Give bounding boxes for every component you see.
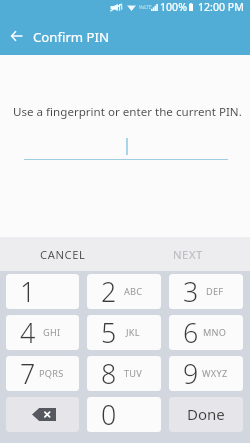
staticText: 7 — [20, 356, 36, 390]
staticText: JKL — [126, 326, 140, 339]
staticText: MNO — [203, 326, 227, 339]
staticText: 100% — [160, 0, 187, 14]
staticText: PQRS — [39, 367, 64, 380]
button[interactable]: CANCEL — [0, 237, 125, 271]
staticText: 9 — [183, 356, 199, 390]
staticText: 1 — [20, 274, 36, 308]
staticText: 5 — [101, 315, 117, 349]
staticText: CANCEL — [40, 247, 86, 262]
staticText: TUV — [124, 367, 143, 380]
staticText: WXYZ — [202, 367, 228, 380]
button[interactable]: 5 — [87, 315, 161, 350]
staticText: NEXT — [173, 247, 203, 262]
button[interactable]: 7 — [6, 356, 79, 391]
button[interactable]: 9 — [169, 356, 243, 391]
staticText: 6 — [183, 315, 199, 349]
staticText: Use a fingerprint or enter the current P… — [13, 104, 242, 120]
button[interactable]: 0 — [87, 397, 161, 432]
button[interactable]: 6 — [169, 315, 243, 350]
staticText: DEF — [206, 285, 224, 298]
staticText: ABC — [124, 285, 143, 298]
button[interactable]: Done — [169, 397, 243, 432]
button[interactable]: 3 — [169, 274, 243, 309]
staticText: 8 — [101, 356, 117, 390]
staticText: VoLTE — [139, 4, 152, 10]
button[interactable]: 8 — [87, 356, 161, 391]
staticText: 2 — [101, 274, 117, 308]
staticText: 0 — [101, 397, 117, 431]
staticText: GHI — [43, 326, 61, 339]
staticText: 12:00 PM — [198, 0, 244, 14]
button[interactable]: 2 — [87, 274, 161, 309]
button[interactable]: 4 — [6, 315, 79, 350]
staticText: 4 — [20, 315, 36, 349]
staticText: 3 — [183, 274, 199, 308]
staticText: Done — [187, 404, 225, 424]
button[interactable]: Navigate up — [5, 25, 28, 47]
button[interactable]: 1 — [6, 274, 79, 309]
button[interactable]: Backspace — [6, 397, 79, 432]
button[interactable]: NEXT — [125, 237, 250, 271]
staticText: Confirm PIN — [33, 28, 110, 46]
